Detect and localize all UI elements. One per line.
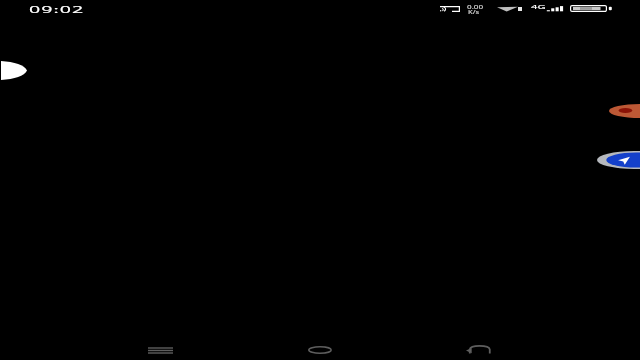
staticText: 09:02	[29, 3, 86, 16]
button[interactable]: Home	[288, 332, 352, 360]
staticText: 0.00	[467, 4, 483, 10]
button[interactable]: Open side panel	[1, 61, 27, 80]
button[interactable]: Floating app bubble	[597, 151, 640, 169]
button[interactable]: Back	[448, 332, 512, 360]
button[interactable]: Floating chat bubble	[609, 104, 640, 118]
button[interactable]: Recents	[128, 332, 192, 360]
staticText: K/s	[468, 9, 479, 15]
staticText: 4G	[531, 3, 547, 11]
